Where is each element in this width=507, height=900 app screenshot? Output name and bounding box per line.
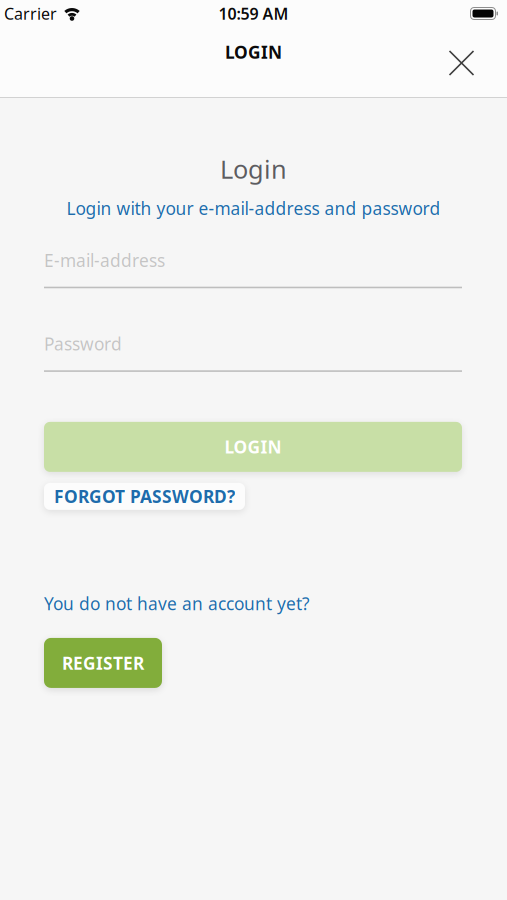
staticText: Login with your e-mail-address and passw… xyxy=(66,197,440,220)
staticText: LOGIN xyxy=(224,435,281,458)
staticText: You do not have an account yet? xyxy=(44,592,310,615)
staticText: LOGIN xyxy=(225,40,282,63)
staticText: Carrier xyxy=(4,3,57,24)
button[interactable] xyxy=(439,40,484,85)
button[interactable]: E-mail-address xyxy=(0,249,507,288)
button[interactable]: Password xyxy=(0,332,507,372)
staticText: FORGOT PASSWORD? xyxy=(54,485,235,508)
staticText: Login xyxy=(220,152,287,186)
button[interactable]: LOGIN xyxy=(44,422,462,472)
button[interactable]: REGISTER xyxy=(44,638,162,688)
staticText: REGISTER xyxy=(62,651,144,674)
staticText: Password xyxy=(44,332,122,355)
staticText: E-mail-address xyxy=(44,249,165,272)
staticText: 10:59 AM xyxy=(218,3,288,24)
button[interactable]: FORGOT PASSWORD? xyxy=(44,483,245,510)
